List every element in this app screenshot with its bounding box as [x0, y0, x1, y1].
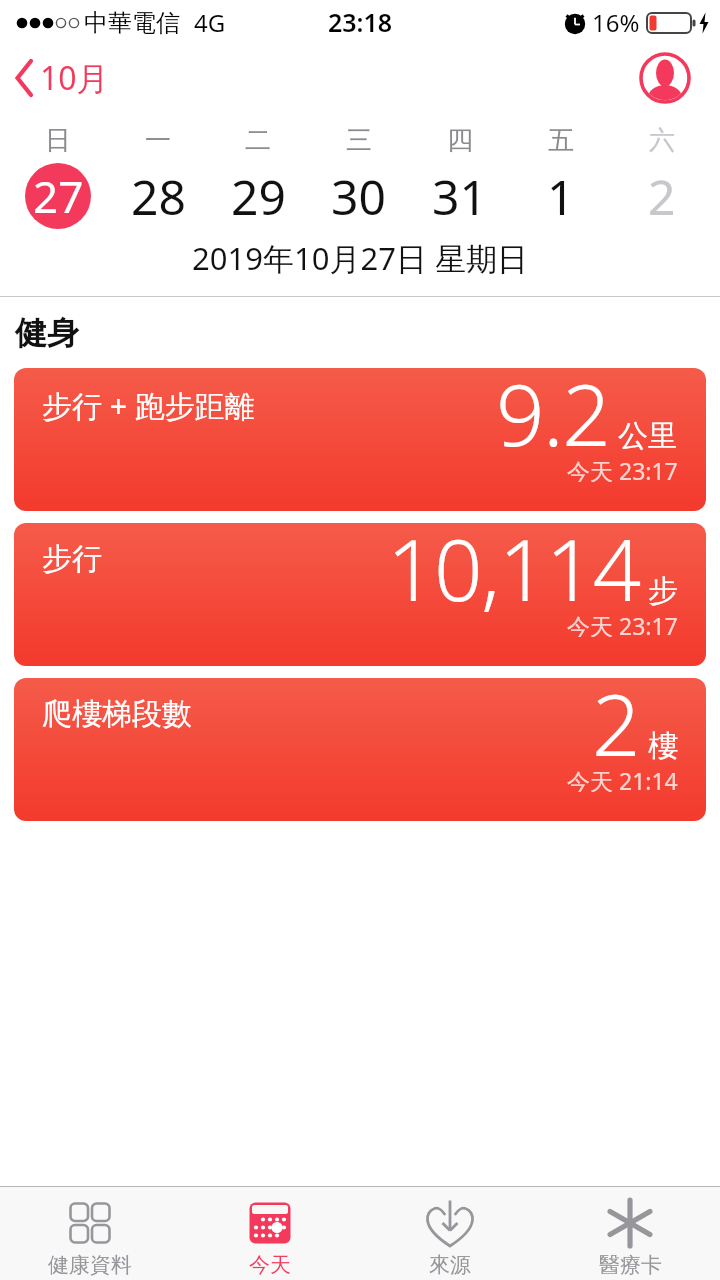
- staticText: 一: [145, 124, 171, 157]
- staticText: 公里: [618, 417, 678, 455]
- staticText: 10月: [40, 56, 109, 100]
- staticText: 爬樓梯段數: [42, 695, 192, 733]
- button[interactable]: 步行: [14, 523, 706, 666]
- button[interactable]: [638, 51, 692, 105]
- staticText: 1: [547, 164, 575, 229]
- staticText: 2: [648, 164, 676, 229]
- staticText: 今天: [249, 1252, 291, 1278]
- button[interactable]: 步行 + 跑步距離: [14, 368, 706, 511]
- staticText: 步行: [42, 540, 102, 578]
- staticText: 10,114: [387, 523, 640, 626]
- button[interactable]: 爬樓梯段數: [14, 678, 706, 821]
- staticText: 29: [231, 164, 286, 229]
- staticText: 醫療卡: [599, 1252, 662, 1278]
- staticText: 28: [131, 164, 186, 229]
- staticText: 今天 23:17: [567, 610, 678, 637]
- button[interactable]: 29: [208, 162, 308, 230]
- button[interactable]: 健康資料: [0, 1187, 180, 1280]
- staticText: 27: [33, 166, 84, 226]
- staticText: 四: [447, 124, 473, 157]
- button[interactable]: 27: [8, 162, 108, 230]
- staticText: 日: [45, 124, 71, 157]
- staticText: 健康資料: [48, 1252, 132, 1278]
- button[interactable]: 1: [510, 162, 611, 230]
- button[interactable]: 醫療卡: [540, 1187, 720, 1280]
- button[interactable]: 2: [611, 162, 712, 230]
- button[interactable]: 28: [108, 162, 208, 230]
- staticText: 30: [331, 164, 386, 229]
- staticText: 五: [548, 124, 574, 157]
- button[interactable]: 30: [308, 162, 409, 230]
- button[interactable]: 來源: [360, 1187, 540, 1280]
- staticText: 三: [346, 124, 372, 157]
- staticText: 樓: [648, 727, 678, 765]
- staticText: 2: [592, 678, 640, 781]
- staticText: 2019年10月27日 星期日: [0, 237, 720, 279]
- staticText: 16%: [592, 6, 640, 39]
- staticText: 23:18: [328, 5, 393, 39]
- staticText: 健身: [15, 313, 79, 353]
- staticText: 步行 + 跑步距離: [42, 385, 255, 426]
- staticText: 二: [245, 124, 271, 157]
- button[interactable]: 今天: [180, 1187, 360, 1280]
- staticText: 今天 21:14: [567, 765, 678, 792]
- staticText: 9.2: [496, 368, 610, 471]
- staticText: 步: [648, 572, 678, 610]
- staticText: 4G: [194, 6, 226, 39]
- staticText: 來源: [429, 1252, 471, 1278]
- staticText: 今天 23:17: [567, 455, 678, 482]
- staticText: 六: [649, 124, 675, 157]
- staticText: 31: [432, 164, 487, 229]
- button[interactable]: 31: [409, 162, 510, 230]
- button[interactable]: 10月: [14, 56, 109, 100]
- staticText: 中華電信: [84, 8, 180, 38]
